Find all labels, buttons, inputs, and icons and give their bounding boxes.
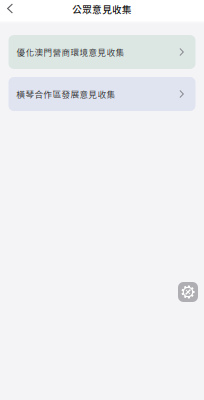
button[interactable]: 橫琴合作區發展意見收集 [8, 77, 195, 111]
button[interactable]: Back [2, 1, 18, 16]
button[interactable]: 優化澳門營商環境意見收集 [8, 35, 195, 69]
staticText: 優化澳門營商環境意見收集 [16, 46, 124, 58]
staticText: 公眾意見收集 [72, 2, 132, 16]
staticText: 橫琴合作區發展意見收集 [16, 88, 115, 100]
button[interactable]: Settings [178, 282, 198, 302]
